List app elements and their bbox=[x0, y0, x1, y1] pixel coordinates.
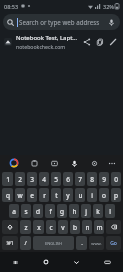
button[interactable]: l bbox=[105, 204, 115, 218]
button[interactable]: 5 bbox=[51, 172, 61, 186]
button[interactable]: Voice search bbox=[107, 18, 116, 27]
staticText: 7 bbox=[78, 175, 82, 184]
button[interactable]: Back bbox=[61, 252, 92, 272]
staticText: w bbox=[17, 191, 23, 200]
staticText: 3 bbox=[30, 175, 34, 184]
button[interactable]: Home bbox=[30, 252, 61, 272]
button[interactable]: p bbox=[111, 188, 121, 202]
button[interactable]: Shift bbox=[2, 220, 18, 234]
staticText: a bbox=[12, 207, 16, 216]
button[interactable]: Edit query bbox=[106, 35, 119, 48]
staticText: 5 bbox=[54, 175, 58, 184]
staticText: Notebook Test, Laptop ... bbox=[16, 34, 78, 42]
staticText: ENGLISH bbox=[45, 241, 62, 246]
staticText: 1 bbox=[6, 175, 10, 184]
button[interactable]: www. bbox=[89, 236, 104, 250]
button[interactable]: Search or type web address bbox=[3, 14, 120, 30]
button[interactable]: r bbox=[39, 188, 49, 202]
staticText: t bbox=[55, 191, 58, 200]
staticText: e bbox=[30, 191, 34, 200]
button[interactable]: z bbox=[20, 220, 31, 234]
button[interactable]: m bbox=[94, 220, 104, 234]
button[interactable]: y bbox=[63, 188, 73, 202]
staticText: 6 bbox=[66, 175, 70, 184]
staticText: z bbox=[24, 223, 28, 232]
button[interactable]: More options bbox=[104, 155, 120, 171]
button[interactable]: 9 bbox=[99, 172, 109, 186]
button[interactable]: Backspace bbox=[106, 220, 121, 234]
button[interactable]: w bbox=[15, 188, 25, 202]
button[interactable]: g bbox=[57, 204, 67, 218]
button[interactable]: 4 bbox=[39, 172, 49, 186]
staticText: 32% bbox=[103, 3, 114, 10]
button[interactable]: Clipboard bbox=[24, 155, 44, 171]
staticText: k bbox=[96, 207, 100, 216]
staticText: q bbox=[6, 191, 10, 200]
button[interactable]: s bbox=[21, 204, 31, 218]
button[interactable]: Share bbox=[80, 35, 93, 48]
button[interactable]: t bbox=[51, 188, 61, 202]
staticText: n bbox=[85, 223, 90, 232]
button[interactable]: / bbox=[20, 236, 31, 250]
staticText: 0 bbox=[114, 175, 118, 184]
button[interactable]: 1 bbox=[2, 172, 13, 186]
button[interactable]: Stickers bbox=[44, 155, 64, 171]
button[interactable]: n bbox=[82, 220, 92, 234]
button[interactable]: h bbox=[69, 204, 79, 218]
button[interactable]: b bbox=[70, 220, 80, 234]
button[interactable]: Recent apps bbox=[0, 252, 30, 272]
staticText: 8 bbox=[90, 175, 94, 184]
button[interactable]: 6 bbox=[63, 172, 73, 186]
button[interactable]: x bbox=[33, 220, 44, 234]
button[interactable]: o bbox=[99, 188, 109, 202]
button[interactable]: e bbox=[27, 188, 37, 202]
button[interactable]: . bbox=[76, 236, 87, 250]
button[interactable]: u bbox=[75, 188, 85, 202]
staticText: / bbox=[24, 239, 27, 247]
staticText: j bbox=[85, 207, 87, 216]
staticText: g bbox=[60, 207, 64, 216]
button[interactable]: c bbox=[46, 220, 56, 234]
button[interactable]: d bbox=[33, 204, 43, 218]
button[interactable]: Copy link bbox=[93, 35, 106, 48]
button[interactable]: !#1 bbox=[2, 236, 18, 250]
button[interactable]: j bbox=[81, 204, 91, 218]
button[interactable]: 0 bbox=[111, 172, 121, 186]
button[interactable]: a bbox=[9, 204, 19, 218]
staticText: i bbox=[91, 191, 93, 200]
staticText: www. bbox=[91, 241, 102, 246]
button[interactable]: Assistant bbox=[3, 155, 24, 171]
staticText: 2 bbox=[18, 175, 22, 184]
button[interactable]: 3 bbox=[27, 172, 37, 186]
button[interactable]: Voice input bbox=[64, 155, 84, 171]
button[interactable]: Hide keyboard bbox=[92, 252, 123, 272]
staticText: u bbox=[78, 191, 83, 200]
staticText: y bbox=[66, 191, 70, 200]
staticText: b bbox=[73, 223, 77, 232]
staticText: p bbox=[114, 191, 118, 200]
staticText: o bbox=[102, 191, 106, 200]
button[interactable]: Keyboard settings bbox=[84, 155, 104, 171]
staticText: f bbox=[49, 207, 52, 216]
staticText: Search or type web address bbox=[19, 18, 105, 26]
button[interactable]: f bbox=[45, 204, 55, 218]
button[interactable]: 8 bbox=[87, 172, 97, 186]
staticText: h bbox=[72, 207, 77, 216]
button[interactable]: Notebook Test, Laptop ... bbox=[0, 32, 123, 51]
staticText: m bbox=[96, 223, 103, 232]
staticText: r bbox=[43, 191, 46, 200]
button[interactable]: 7 bbox=[75, 172, 85, 186]
button[interactable]: k bbox=[93, 204, 103, 218]
staticText: !#1 bbox=[6, 240, 14, 247]
button[interactable]: q bbox=[2, 188, 13, 202]
button[interactable]: ENGLISH bbox=[33, 236, 74, 250]
staticText: notebookcheck.com bbox=[16, 43, 66, 50]
button[interactable]: i bbox=[87, 188, 97, 202]
staticText: 4 bbox=[42, 175, 46, 184]
button[interactable]: 2 bbox=[15, 172, 25, 186]
staticText: x bbox=[37, 223, 41, 232]
staticText: 08:53 bbox=[4, 3, 19, 10]
staticText: Go bbox=[110, 240, 117, 247]
button[interactable]: v bbox=[58, 220, 68, 234]
button[interactable]: Go bbox=[106, 236, 121, 250]
